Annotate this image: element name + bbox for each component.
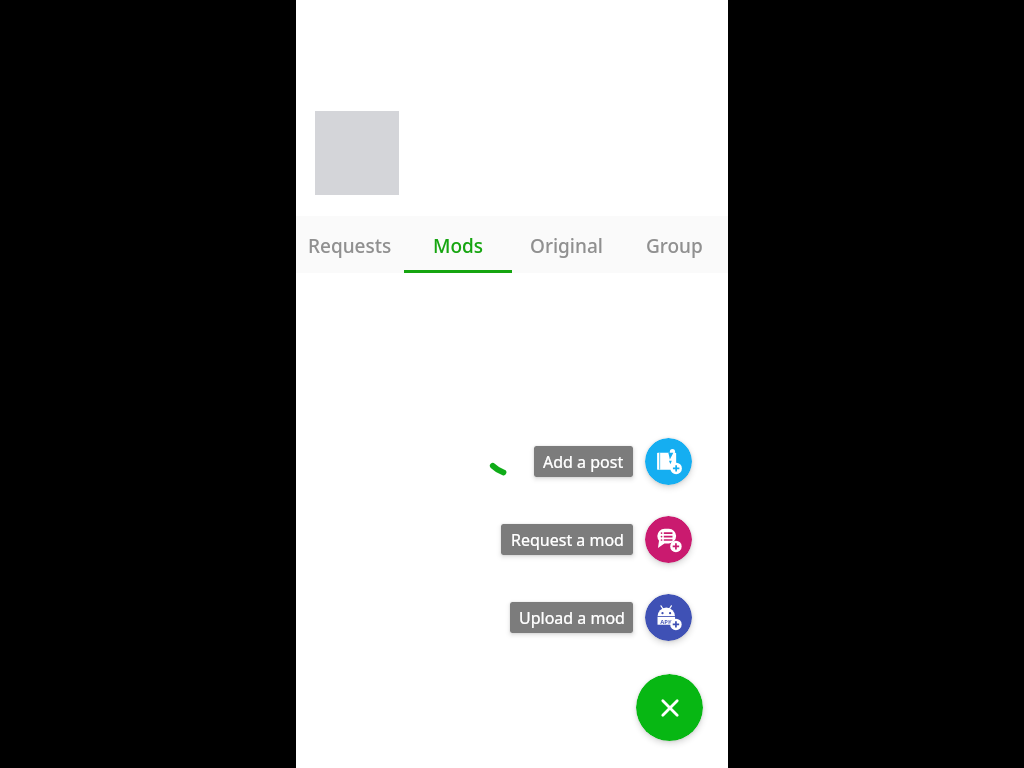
staticText: Original: [530, 233, 603, 259]
button[interactable]: Original: [512, 216, 620, 273]
staticText: Mods: [433, 233, 484, 259]
button[interactable]: Upload a mod: [510, 602, 633, 633]
button[interactable]: Add a post: [645, 438, 692, 485]
staticText: Requests: [308, 233, 392, 259]
button[interactable]: Request a mod: [501, 524, 633, 555]
button[interactable]: Close actions menu: [636, 674, 703, 741]
staticText: Group: [646, 233, 703, 259]
button[interactable]: Request a mod: [645, 516, 692, 563]
button[interactable]: Add a post: [534, 446, 633, 477]
staticText: Upload a mod: [519, 607, 625, 629]
staticText: APK: [658, 618, 674, 626]
staticText: Add a post: [543, 451, 624, 473]
button[interactable]: Upload a mod: [645, 594, 692, 641]
button[interactable]: Group: [620, 216, 728, 273]
button[interactable]: Mods: [404, 216, 512, 273]
staticText: Request a mod: [511, 529, 624, 551]
button[interactable]: Requests: [296, 216, 404, 273]
